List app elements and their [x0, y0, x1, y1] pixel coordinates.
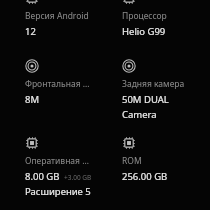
- button[interactable]: Front camera: [25, 59, 97, 106]
- button[interactable]: RAM: [25, 136, 97, 198]
- staticText: Расширение 5 ГБ: [25, 185, 93, 198]
- staticText: Оперативная п...: [25, 155, 93, 167]
- button[interactable]: Processor: [122, 0, 171, 38]
- staticText: 50M DUAL: [122, 93, 169, 106]
- other: Rear camera: [122, 59, 136, 73]
- staticText: +3.00 GB: [64, 173, 92, 182]
- other: Processor: [122, 0, 136, 5]
- staticText: Процессор: [122, 10, 167, 22]
- staticText: Фронтальная к...: [25, 78, 93, 90]
- staticText: Задняя камера: [122, 78, 185, 90]
- staticText: Версия Android: [25, 10, 89, 22]
- staticText: 8M: [25, 93, 40, 106]
- staticText: ROM: [122, 155, 142, 167]
- button[interactable]: Rear camera: [122, 59, 189, 121]
- staticText: Helio G99: [122, 25, 166, 38]
- staticText: 12: [25, 25, 36, 38]
- other: Android version: [25, 0, 39, 5]
- button[interactable]: Storage: [122, 136, 172, 183]
- button[interactable]: Android version: [25, 0, 93, 38]
- staticText: Camera: [122, 108, 157, 121]
- other: Front camera: [25, 59, 39, 73]
- staticText: 256.00 GB: [122, 170, 168, 183]
- staticText: 8.00 GB: [25, 170, 60, 183]
- other: Storage: [122, 136, 136, 150]
- other: RAM: [25, 136, 39, 150]
